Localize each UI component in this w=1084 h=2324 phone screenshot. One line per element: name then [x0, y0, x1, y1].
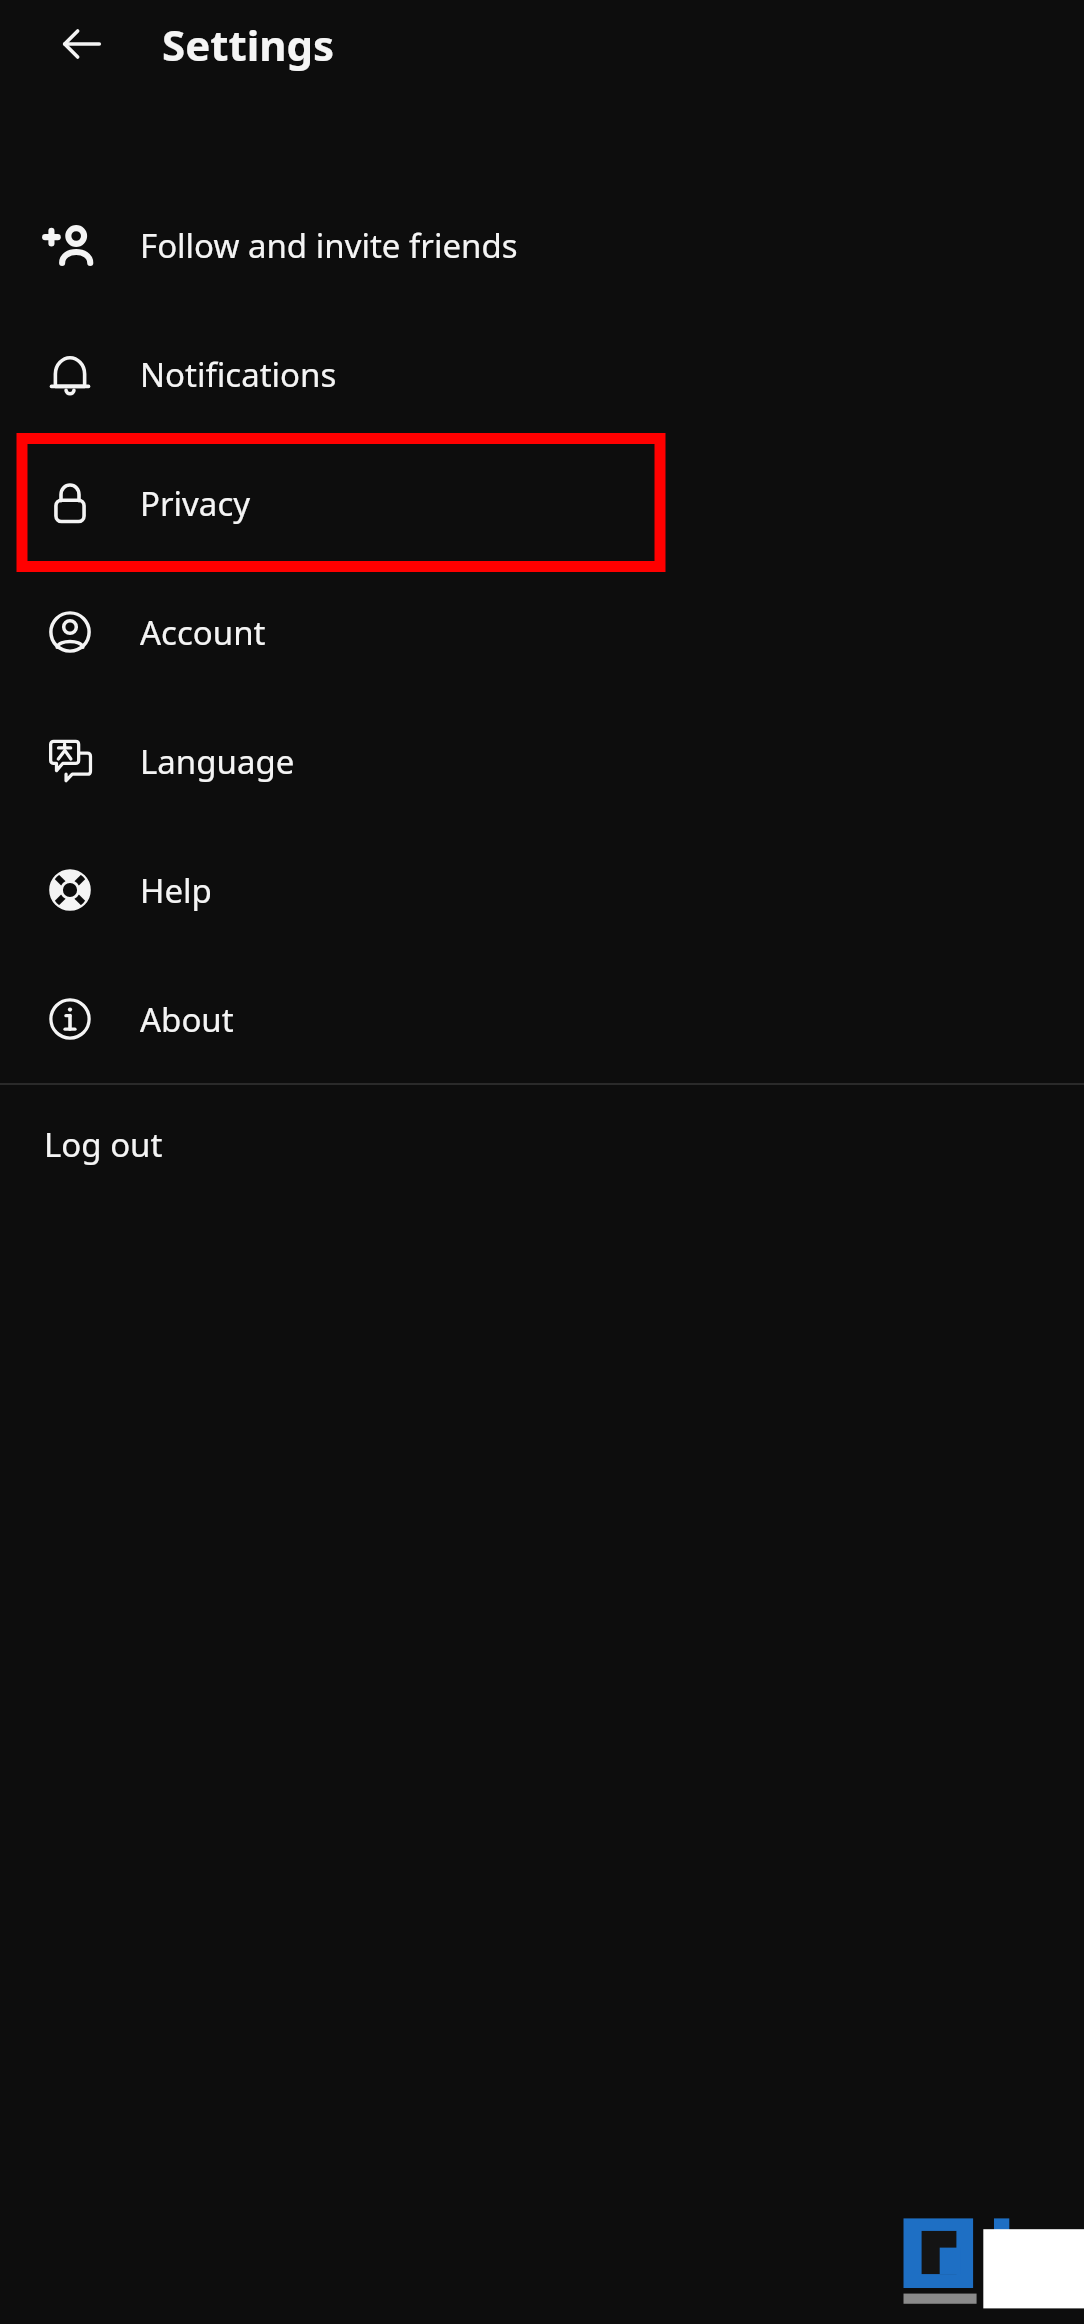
- staticText: Language: [140, 739, 295, 784]
- staticText: Help: [140, 868, 212, 913]
- staticText: About: [140, 997, 234, 1042]
- button[interactable]: Account: [0, 567, 1084, 696]
- button[interactable]: Follow and invite friends: [0, 180, 1084, 309]
- button[interactable]: About: [0, 954, 1084, 1083]
- button[interactable]: Notifications: [0, 309, 1084, 438]
- staticText: Privacy: [140, 481, 251, 526]
- staticText: Settings: [162, 16, 335, 73]
- button[interactable]: Back: [38, 0, 126, 88]
- button[interactable]: Language: [0, 696, 1084, 825]
- button[interactable]: Help: [0, 825, 1084, 954]
- staticText: Account: [140, 610, 266, 655]
- staticText: Follow and invite friends: [140, 223, 518, 268]
- button[interactable]: Privacy: [0, 438, 1084, 567]
- staticText: Notifications: [140, 352, 337, 397]
- button[interactable]: Log out: [0, 1085, 1084, 1203]
- staticText: Log out: [44, 1122, 163, 1167]
